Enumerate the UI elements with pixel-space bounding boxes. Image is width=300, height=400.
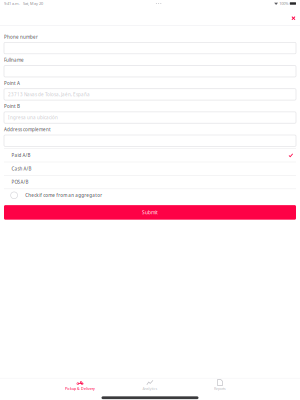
button[interactable]: Close	[287, 11, 300, 25]
button[interactable]: Submit	[4, 205, 296, 220]
staticText: Fullname	[4, 57, 24, 63]
staticText: Paid A/B	[11, 152, 30, 158]
button[interactable]: Cash A/B	[4, 162, 296, 176]
staticText: Pickup & Delivery	[65, 386, 95, 391]
button[interactable]: Reports	[190, 378, 250, 392]
staticText: Phone number	[4, 34, 38, 40]
staticText: Address complement	[4, 126, 51, 133]
button[interactable]: Pickup & Delivery	[50, 378, 110, 392]
staticText: Analytics	[142, 386, 157, 391]
staticText: Submit	[142, 209, 158, 216]
button[interactable]: Paid A/B	[4, 149, 296, 162]
staticText: Point B	[4, 103, 20, 109]
staticText: 9:41 a.m. Sat, May 20	[4, 1, 43, 6]
staticText: 23713 Navas de Tolosa, Jaén, España	[8, 91, 90, 97]
button[interactable]: Check if come from an aggregator	[4, 189, 296, 201]
button[interactable]: POS A/B	[4, 176, 296, 189]
staticText: POS A/B	[11, 179, 28, 185]
button[interactable]: Analytics	[120, 378, 180, 392]
staticText: 100%	[279, 1, 288, 6]
staticText: Cash A/B	[11, 166, 31, 172]
staticText: Reports	[214, 386, 226, 391]
staticText: Point A	[4, 80, 20, 86]
staticText: Check if come from an aggregator	[25, 192, 102, 198]
staticText: Ingresa una ubicación	[8, 114, 58, 121]
